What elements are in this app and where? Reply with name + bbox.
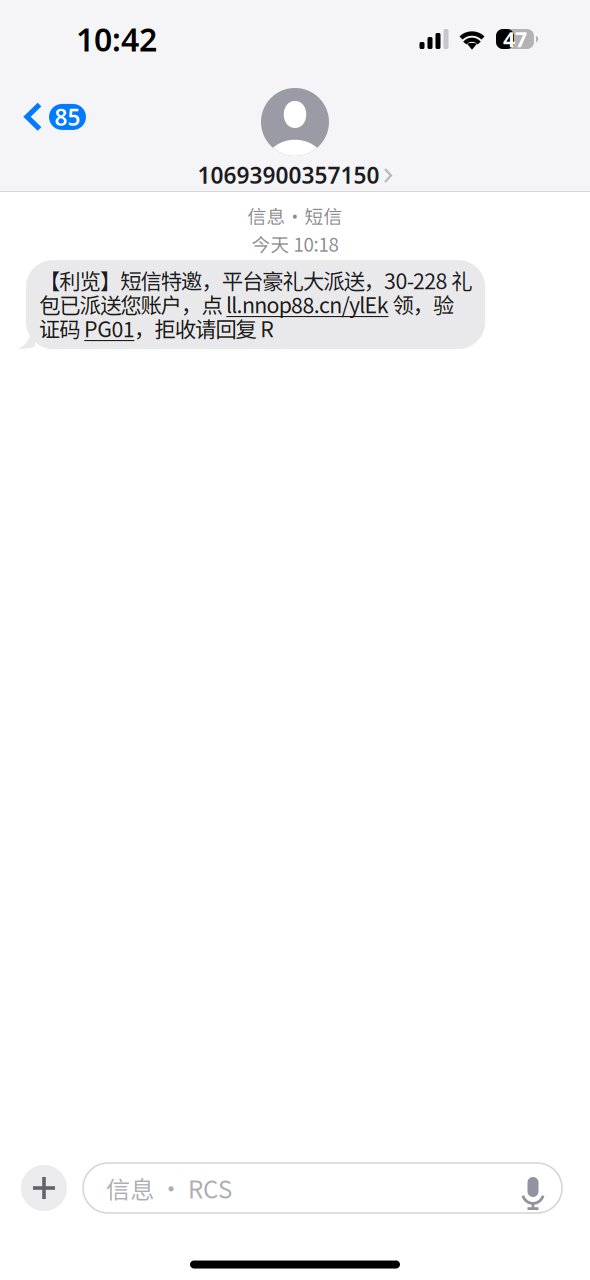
staticText: 10693900357150 [197,160,379,190]
button[interactable]: Dictate [520,1171,546,1205]
staticText: 信息・短信 [247,202,342,229]
staticText: 包已派送您账户，点 ll.nnop88.cn/ylEk 领，验 [39,289,454,319]
staticText: 今天 10:18 [251,230,338,257]
staticText: 10:42 [76,18,157,60]
staticText: 证码 PG01，拒收请回复 R [39,313,274,343]
staticText: 【利览】短信特邀，平台豪礼大派送，30-228 礼 [39,265,472,295]
staticText: 85 [54,102,80,132]
button[interactable]: 10693900357150 [197,80,392,190]
button[interactable]: Add attachment [21,1165,67,1211]
staticText: 47 [503,25,527,53]
staticText: 信息 • RCS [106,1171,232,1205]
button[interactable]: 85 [0,80,106,150]
